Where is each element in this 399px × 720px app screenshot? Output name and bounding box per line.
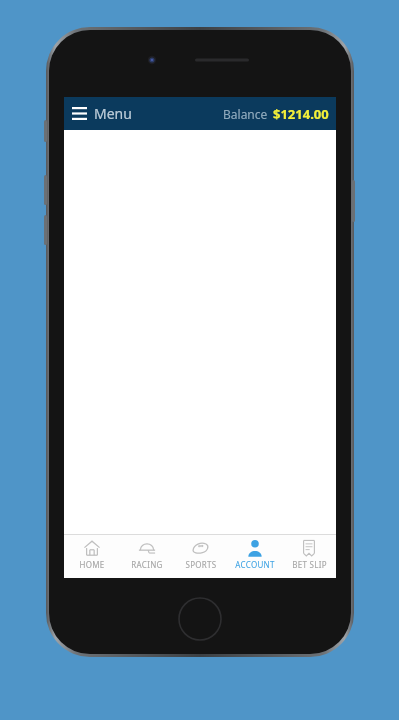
button[interactable]: ACCOUNT [228, 535, 282, 578]
other: Open menu [72, 107, 87, 120]
button[interactable]: BET SLIP [282, 535, 336, 578]
button[interactable]: Open menu [72, 104, 132, 123]
staticText: ACCOUNT [235, 559, 275, 570]
staticText: SPORTS [185, 559, 217, 570]
staticText: Balance [223, 106, 268, 122]
staticText: HOME [79, 559, 105, 570]
button[interactable]: HOME [64, 535, 119, 578]
button[interactable]: Balance [223, 105, 329, 123]
button[interactable]: RACING [119, 535, 174, 578]
staticText: $1214.00 [273, 105, 329, 123]
staticText: RACING [131, 559, 163, 570]
button[interactable]: SPORTS [174, 535, 228, 578]
staticText: BET SLIP [292, 559, 327, 570]
staticText: Menu [94, 104, 132, 123]
